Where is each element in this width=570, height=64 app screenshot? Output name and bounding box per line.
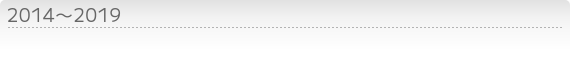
staticText: 2014〜2019	[7, 1, 122, 27]
button[interactable]	[0, 0, 570, 64]
